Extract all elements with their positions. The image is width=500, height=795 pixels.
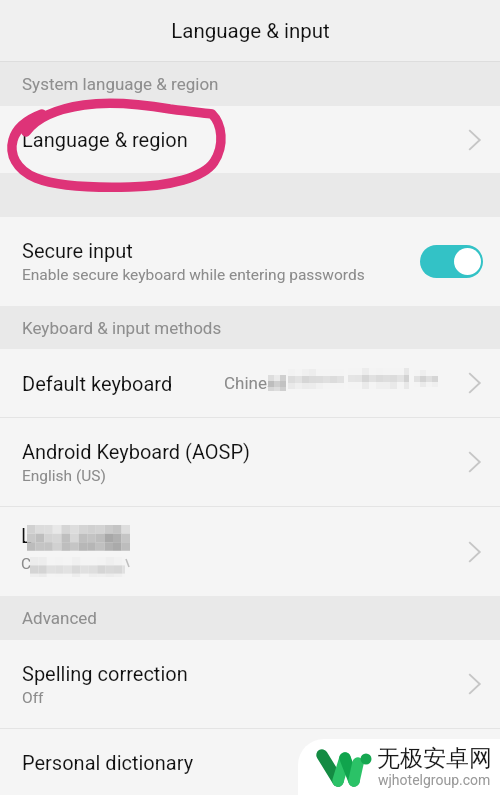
button[interactable]: Spelling correction [0, 640, 500, 728]
button[interactable]: Secure input toggle [420, 245, 483, 278]
staticText: Keyboard & input methods [22, 318, 222, 338]
button[interactable]: Secure input [0, 217, 500, 306]
staticText: Spelling correction [22, 662, 188, 685]
staticText: Off [22, 689, 44, 707]
button[interactable]: Android Keyboard (AOSP) [0, 418, 500, 506]
button[interactable]: Default keyboard [0, 349, 500, 417]
button[interactable]: Personal dictionary [0, 729, 500, 795]
staticText: Default keyboard [22, 372, 173, 395]
staticText: Enable secure keyboard while entering pa… [22, 266, 365, 284]
button[interactable]: Language & region [0, 106, 500, 173]
staticText: L [21, 524, 32, 547]
staticText: English (US) [22, 467, 106, 485]
staticText: Secure input [22, 239, 133, 262]
staticText: Android Keyboard (AOSP) [22, 440, 251, 463]
staticText: wjhotelgroup.com [378, 772, 491, 788]
staticText: Language & region [22, 128, 188, 151]
staticText: Advanced [22, 608, 97, 628]
staticText: Language & input [171, 19, 330, 43]
staticText: C [21, 555, 32, 573]
button[interactable]: L [0, 507, 500, 596]
staticText: Chinese [224, 373, 285, 393]
staticText: 无极安卓网 [377, 744, 492, 773]
staticText: Personal dictionary [22, 751, 194, 774]
staticText: System language & region [22, 74, 219, 94]
